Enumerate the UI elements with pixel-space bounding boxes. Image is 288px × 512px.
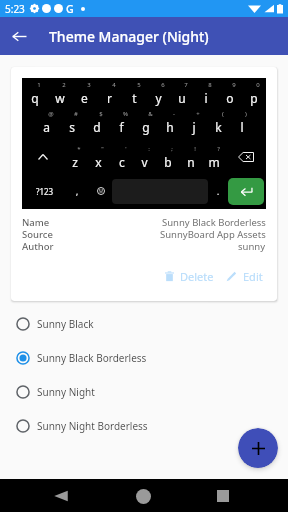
staticText: a [43, 119, 50, 135]
staticText: ) [245, 110, 247, 118]
staticText: Source [22, 228, 53, 240]
staticText: : [148, 145, 150, 153]
staticText: 9 [232, 81, 236, 89]
staticText: f [119, 119, 124, 135]
staticText: 5:23 [5, 2, 25, 16]
staticText: ( [222, 110, 224, 118]
staticText: @ [48, 110, 54, 118]
staticText: % [123, 110, 128, 118]
staticText: w [55, 90, 65, 106]
staticText: 2 [62, 81, 66, 89]
staticText: t [132, 90, 137, 106]
staticText: Edit [243, 269, 263, 284]
staticText: 6 [161, 81, 165, 89]
button[interactable]: Back [0, 17, 38, 55]
staticText: e [81, 90, 88, 106]
button[interactable]: Edit [222, 265, 267, 288]
staticText: Sunny Black [37, 317, 94, 331]
staticText: 3 [87, 81, 91, 89]
button[interactable]: Delete [161, 265, 218, 288]
staticText: $ [99, 110, 103, 118]
staticText: ? [217, 145, 220, 153]
staticText: ; [171, 145, 173, 153]
staticText: p [250, 90, 258, 106]
button[interactable]: Sunny Night Borderless [0, 409, 288, 443]
button[interactable]: Back [46, 481, 76, 511]
staticText: Sunny Black Borderless [162, 216, 266, 228]
staticText: g [142, 119, 150, 135]
staticText: j [192, 119, 196, 135]
staticText: 0 [256, 81, 260, 89]
staticText: 8 [208, 81, 212, 89]
staticText: 5 [137, 81, 141, 89]
staticText: - [173, 110, 175, 118]
staticText: k [215, 119, 222, 135]
staticText: b [164, 154, 172, 170]
staticText: r [107, 90, 112, 106]
staticText: ' [125, 145, 127, 153]
staticText: s [69, 119, 75, 135]
staticText: 1 [37, 81, 41, 89]
staticText: m [208, 154, 220, 170]
staticText: Name [22, 216, 50, 228]
button[interactable]: Add theme [238, 428, 278, 468]
staticText: ! [194, 145, 196, 153]
staticText: , [76, 186, 79, 197]
staticText: n [187, 154, 195, 170]
button[interactable]: Recents [211, 481, 241, 511]
staticText: 7 [184, 81, 188, 89]
staticText: l [240, 119, 244, 135]
staticText: i [204, 90, 208, 106]
staticText: v [141, 154, 148, 170]
staticText: Delete [180, 269, 214, 284]
staticText: + [196, 110, 200, 118]
staticText: & [148, 110, 153, 118]
staticText: Sunny Black Borderless [37, 351, 147, 365]
button[interactable]: Sunny Black [0, 307, 288, 341]
staticText: SunnyBoard App Assets [160, 228, 266, 240]
staticText: " [101, 145, 104, 153]
staticText: sunny [238, 240, 266, 252]
staticText: . [217, 186, 220, 197]
staticText: q [31, 90, 39, 106]
staticText: G [66, 2, 74, 16]
staticText: Sunny Night Borderless [37, 419, 148, 433]
staticText: * [77, 145, 81, 153]
staticText: c [119, 154, 125, 170]
staticText: u [178, 90, 186, 106]
staticText: h [166, 119, 174, 135]
staticText: ?123 [36, 186, 54, 197]
button[interactable]: Home [128, 481, 158, 511]
button[interactable]: Sunny Night [0, 375, 288, 409]
staticText: Author [22, 240, 54, 252]
staticText: y [155, 90, 162, 106]
staticText: Theme Manager (Night) [49, 27, 209, 46]
staticText: d [93, 119, 101, 135]
staticText: Sunny Night [37, 385, 95, 399]
staticText: x [95, 154, 102, 170]
staticText: 4 [112, 81, 116, 89]
staticText: z [72, 154, 78, 170]
button[interactable]: Sunny Black Borderless [0, 341, 288, 375]
staticText: # [74, 110, 78, 118]
staticText: o [226, 90, 234, 106]
